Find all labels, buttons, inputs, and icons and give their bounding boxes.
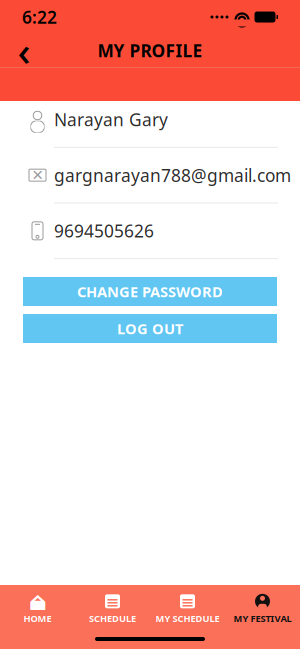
button[interactable]: MY SCHEDULE: [150, 593, 225, 625]
staticText: MY FESTIVAL: [233, 612, 291, 625]
button[interactable]: CHANGE PASSWORD: [23, 277, 277, 306]
staticText: HOME: [23, 612, 51, 625]
staticText: ‹: [17, 24, 30, 77]
staticText: Narayan Gary: [54, 108, 168, 131]
staticText: CHANGE PASSWORD: [77, 282, 223, 301]
staticText: 6:22: [22, 5, 57, 28]
staticText: MY SCHEDULE: [155, 612, 219, 625]
button[interactable]: ⌂: [0, 593, 75, 625]
staticText: SCHEDULE: [89, 612, 136, 625]
staticText: 9694505626: [54, 219, 154, 242]
button[interactable]: SCHEDULE: [75, 593, 150, 625]
button[interactable]: Back: [4, 33, 44, 67]
staticText: MY PROFILE: [97, 39, 202, 62]
button[interactable]: LOG OUT: [23, 314, 277, 343]
staticText: gargnarayan788@gmail.com: [54, 164, 291, 187]
staticText: ✕: [31, 167, 43, 183]
button[interactable]: MY FESTIVAL: [225, 593, 300, 625]
staticText: ⌂: [28, 587, 46, 616]
staticText: LOG OUT: [117, 319, 183, 338]
